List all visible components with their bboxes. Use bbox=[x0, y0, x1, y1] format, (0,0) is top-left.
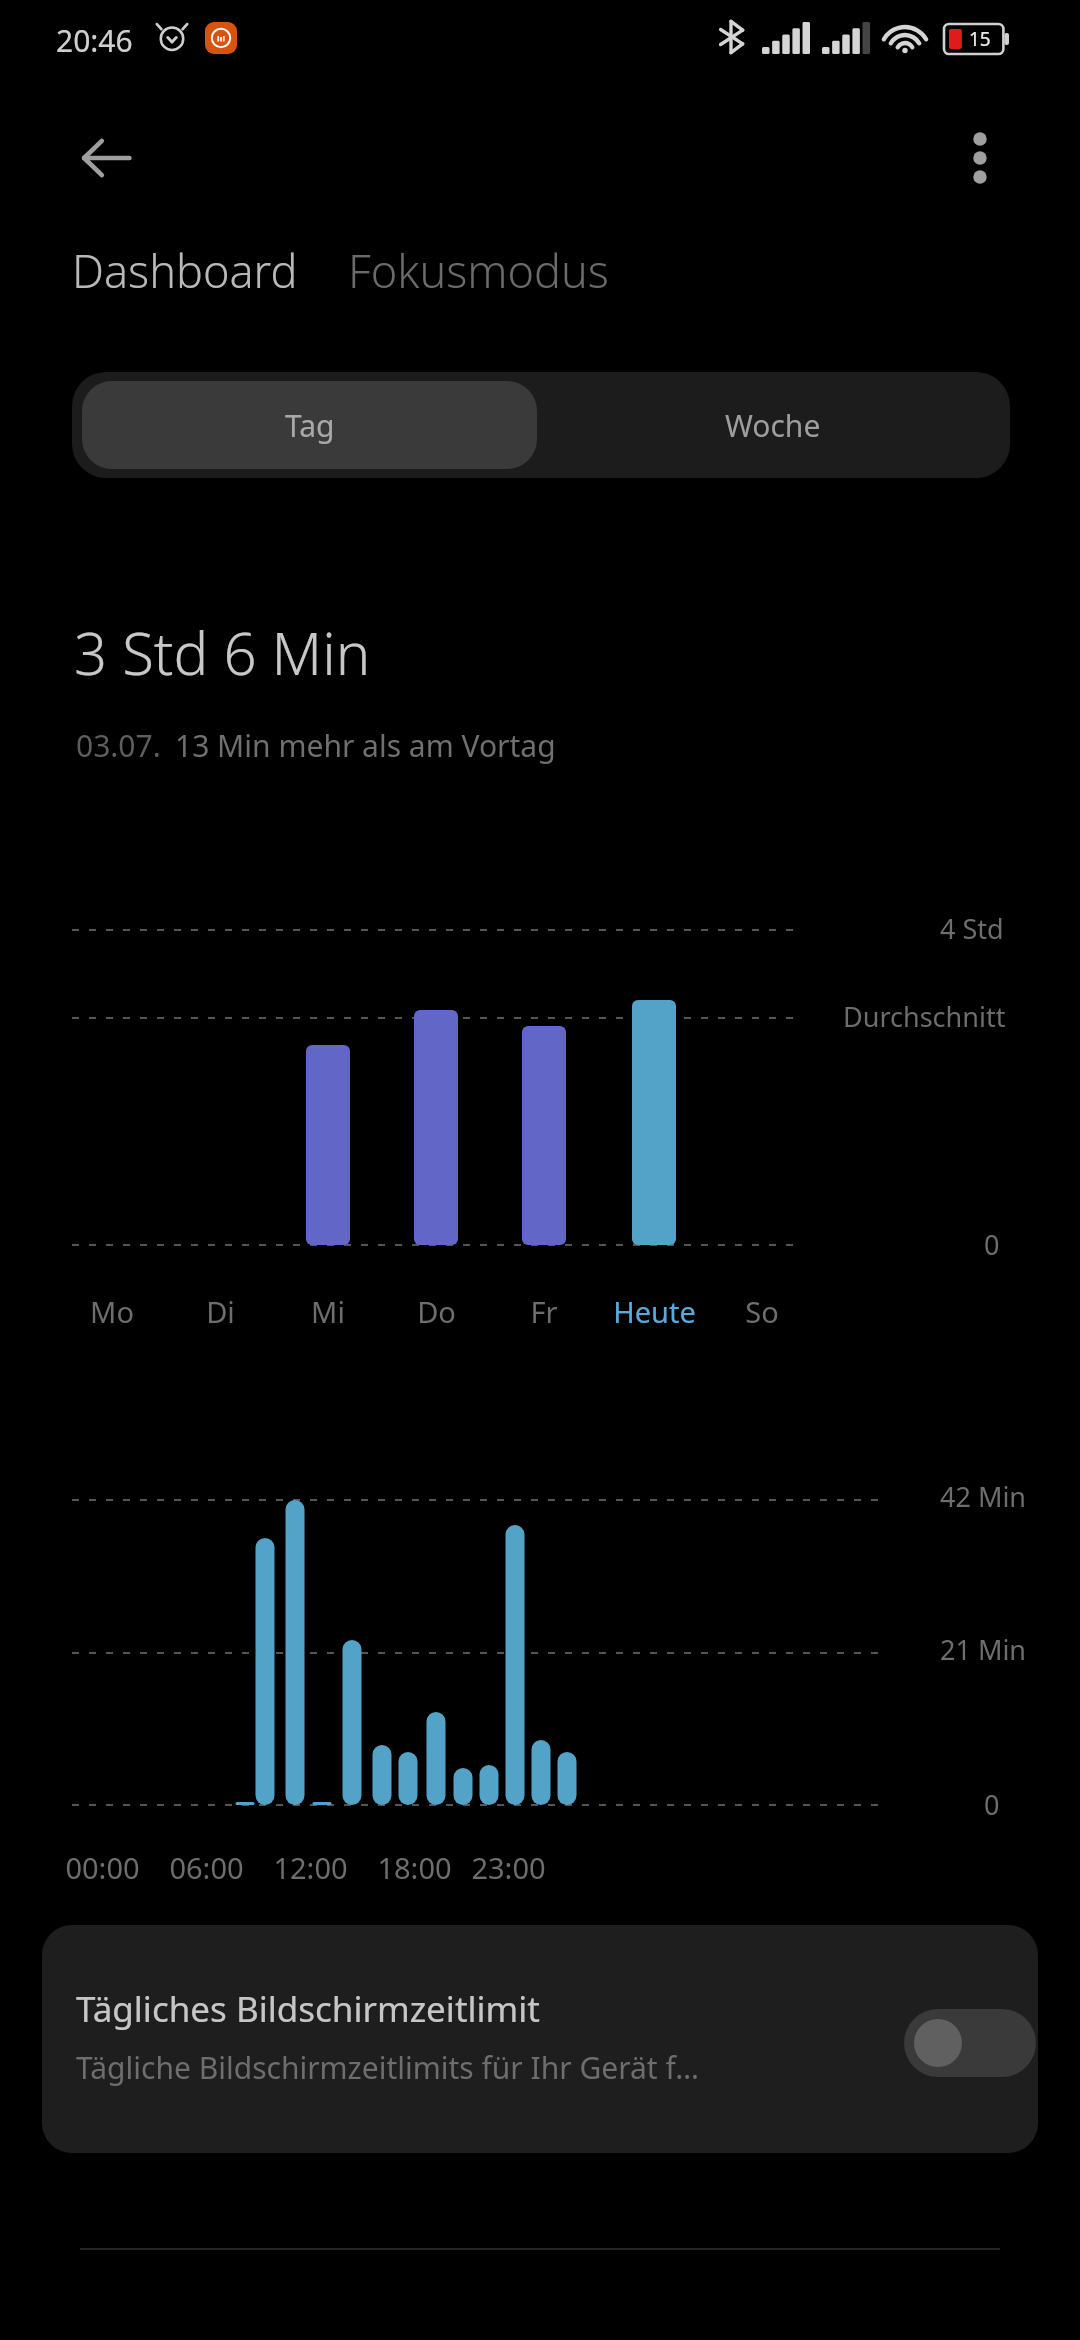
button[interactable]: Back bbox=[58, 110, 154, 206]
button[interactable]: Mi bbox=[268, 1288, 388, 1334]
staticText: 21 Min bbox=[940, 1631, 1027, 1668]
staticText: 20:46 bbox=[56, 20, 133, 61]
button[interactable]: Fr bbox=[484, 1288, 604, 1334]
button[interactable]: So bbox=[702, 1288, 822, 1334]
staticText: 0 bbox=[984, 1226, 1000, 1263]
button[interactable]: Mo bbox=[52, 1288, 172, 1334]
staticText: 3 Std 6 Min bbox=[74, 613, 371, 692]
staticText: Tägliches Bildschirmzeitlimit bbox=[76, 1985, 540, 2033]
staticText: 12:00 bbox=[273, 1848, 348, 1887]
button[interactable]: Tägliches Bildschirmzeitlimit bbox=[42, 1925, 1038, 2153]
staticText: Fr bbox=[530, 1292, 558, 1331]
button[interactable]: Dashboard bbox=[72, 240, 298, 301]
staticText: 23:00 bbox=[471, 1848, 546, 1887]
staticText: Di bbox=[206, 1292, 235, 1331]
staticText: 13 Min mehr als am Vortag bbox=[175, 725, 556, 766]
button[interactable]: Tägliches Bildschirmzeitlimit toggle bbox=[904, 2009, 1036, 2077]
button[interactable]: Di bbox=[160, 1288, 280, 1334]
button[interactable]: Fokusmodus bbox=[348, 240, 609, 301]
staticText: Mi bbox=[311, 1292, 345, 1331]
staticText: 15 bbox=[969, 26, 991, 52]
button[interactable]: Woche bbox=[545, 381, 1000, 469]
button[interactable]: Do bbox=[376, 1288, 496, 1334]
staticText: Do bbox=[417, 1292, 456, 1331]
staticText: 06:00 bbox=[169, 1848, 244, 1887]
staticText: Mo bbox=[90, 1292, 134, 1331]
staticText: Fokusmodus bbox=[348, 240, 609, 301]
staticText: Tag bbox=[285, 405, 335, 446]
staticText: Dashboard bbox=[72, 240, 298, 301]
staticText: 00:00 bbox=[65, 1848, 140, 1887]
button[interactable]: Tag bbox=[82, 381, 537, 469]
staticText: 4 Std bbox=[940, 910, 1004, 947]
staticText: 0 bbox=[984, 1786, 1000, 1823]
staticText: 42 Min bbox=[940, 1478, 1027, 1515]
staticText: Heute bbox=[613, 1292, 696, 1331]
button[interactable]: Heute bbox=[594, 1288, 714, 1334]
staticText: Woche bbox=[725, 405, 821, 446]
staticText: So bbox=[745, 1292, 779, 1331]
staticText: Tägliche Bildschirmzeitlimits für Ihr Ge… bbox=[76, 2047, 699, 2088]
staticText: 03.07. bbox=[76, 725, 161, 766]
button[interactable]: More options bbox=[932, 110, 1028, 206]
staticText: Durchschnitt bbox=[843, 998, 1006, 1035]
staticText: 18:00 bbox=[377, 1848, 452, 1887]
